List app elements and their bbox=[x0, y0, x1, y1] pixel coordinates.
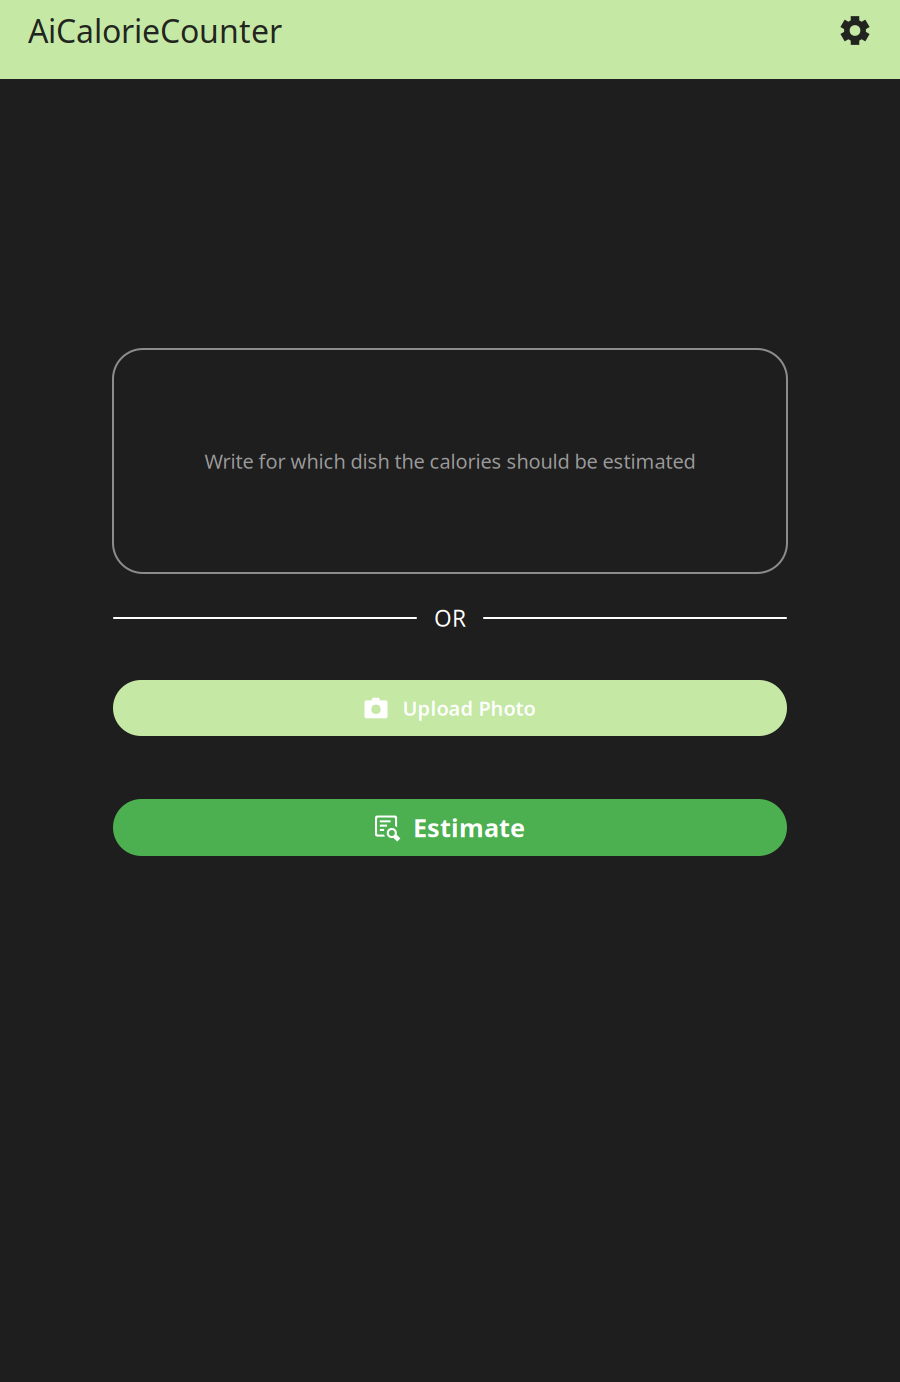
button[interactable]: Write for which dish the calories should… bbox=[113, 349, 787, 573]
button[interactable]: Upload Photo bbox=[113, 680, 787, 736]
staticText: AiCalorieCounter bbox=[28, 9, 282, 52]
staticText: Upload Photo bbox=[402, 695, 535, 721]
staticText: Write for which dish the calories should… bbox=[204, 448, 695, 474]
button[interactable]: Estimate bbox=[113, 799, 787, 856]
staticText: OR bbox=[434, 603, 466, 633]
button[interactable]: Settings bbox=[832, 7, 878, 53]
staticText: Estimate bbox=[413, 811, 525, 844]
